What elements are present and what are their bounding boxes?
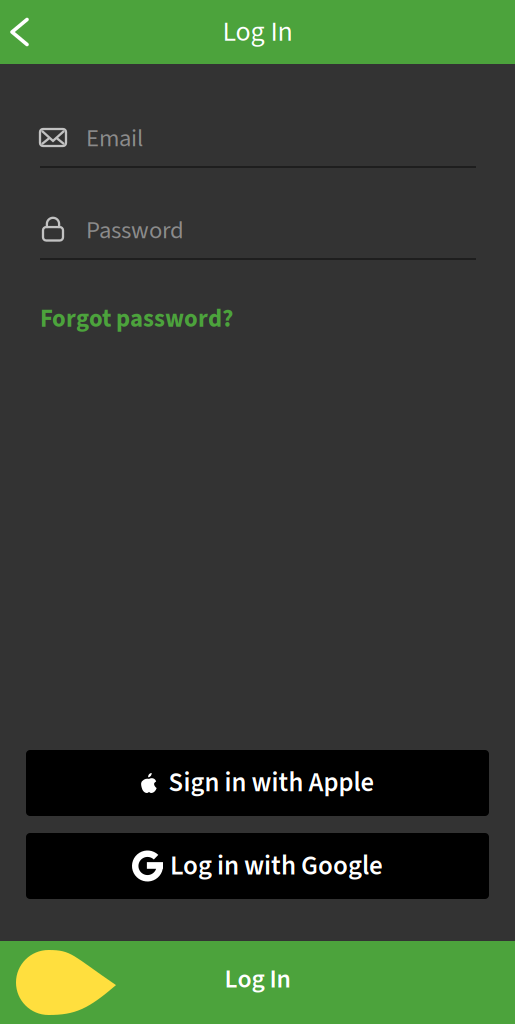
staticText: Log In	[222, 12, 292, 52]
button[interactable]: Sign in with Apple	[26, 750, 489, 816]
staticText: Sign in with Apple	[168, 764, 374, 802]
button[interactable]: Forgot password?	[40, 304, 233, 334]
staticText: Log in with Google	[170, 847, 383, 885]
staticText: Email	[86, 121, 143, 156]
button[interactable]: Back	[0, 0, 47, 64]
staticText: Forgot password?	[40, 301, 233, 336]
button[interactable]: Log In	[0, 941, 515, 1024]
staticText: Log In	[224, 961, 290, 998]
staticText: Password	[86, 213, 184, 248]
button[interactable]: Log in with Google	[26, 833, 489, 899]
